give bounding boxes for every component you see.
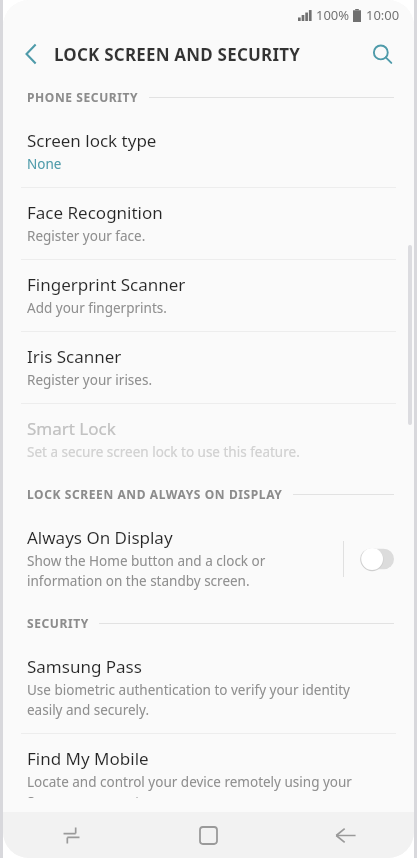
staticText: Add your fingerprints. <box>27 299 167 317</box>
button[interactable]: Always On Display <box>3 513 414 604</box>
button[interactable]: Always On Display toggle <box>360 541 396 577</box>
staticText: None <box>27 155 62 173</box>
button[interactable]: Smart Lock <box>3 404 414 475</box>
staticText: LOCK SCREEN AND SECURITY <box>54 43 301 66</box>
staticText: Use biometric authentication to verify y… <box>27 681 350 719</box>
button[interactable]: Iris Scanner <box>3 332 414 403</box>
button[interactable]: Home <box>140 812 277 858</box>
button[interactable]: Fingerprint Scanner <box>3 260 414 331</box>
staticText: Fingerprint Scanner <box>27 273 186 296</box>
staticText: Screen lock type <box>27 129 157 152</box>
staticText: Locate and control your device remotely … <box>27 773 352 798</box>
button[interactable]: Samsung Pass <box>3 642 414 733</box>
button[interactable]: Search <box>362 34 402 74</box>
button[interactable]: Find My Mobile <box>3 734 414 812</box>
staticText: Face Recognition <box>27 201 163 224</box>
staticText: LOCK SCREEN AND ALWAYS ON DISPLAY <box>27 486 283 502</box>
staticText: Smart Lock <box>27 417 116 440</box>
button[interactable]: Back <box>277 812 414 858</box>
staticText: Register your face. <box>27 227 146 245</box>
staticText: Always On Display <box>27 526 173 549</box>
staticText: Register your irises. <box>27 371 153 389</box>
staticText: 100% <box>316 6 350 24</box>
staticText: PHONE SECURITY <box>27 89 139 105</box>
staticText: 10:00 <box>366 6 400 24</box>
button[interactable]: Navigate up <box>13 36 49 72</box>
staticText: Iris Scanner <box>27 345 122 368</box>
staticText: Find My Mobile <box>27 747 149 770</box>
button[interactable]: Screen lock type <box>3 116 414 187</box>
staticText: Show the Home button and a clock or info… <box>27 552 266 590</box>
staticText: Samsung Pass <box>27 655 142 678</box>
button[interactable]: Recents <box>3 812 140 858</box>
button[interactable]: Face Recognition <box>3 188 414 259</box>
staticText: SECURITY <box>27 615 89 631</box>
staticText: Set a secure screen lock to use this fea… <box>27 443 300 461</box>
